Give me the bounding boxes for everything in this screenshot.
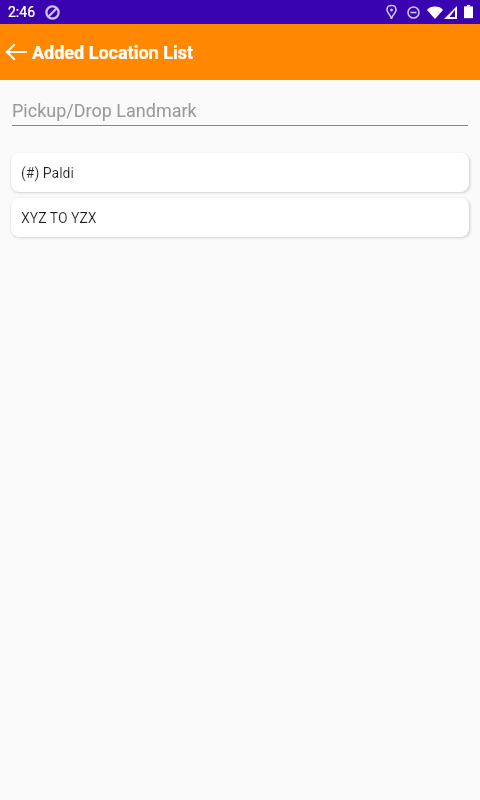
staticText: 2:46 <box>8 4 35 20</box>
staticText: XYZ TO YZX <box>21 210 97 226</box>
button[interactable]: Pickup/Drop Landmark <box>12 100 468 126</box>
staticText: Pickup/Drop Landmark <box>12 100 197 121</box>
button[interactable]: XYZ TO YZX <box>11 198 469 237</box>
staticText: Added Location List <box>32 42 194 63</box>
staticText: (#) Paldi <box>21 165 74 181</box>
button[interactable]: (#) Paldi <box>11 153 469 192</box>
button[interactable]: Back <box>0 29 31 75</box>
